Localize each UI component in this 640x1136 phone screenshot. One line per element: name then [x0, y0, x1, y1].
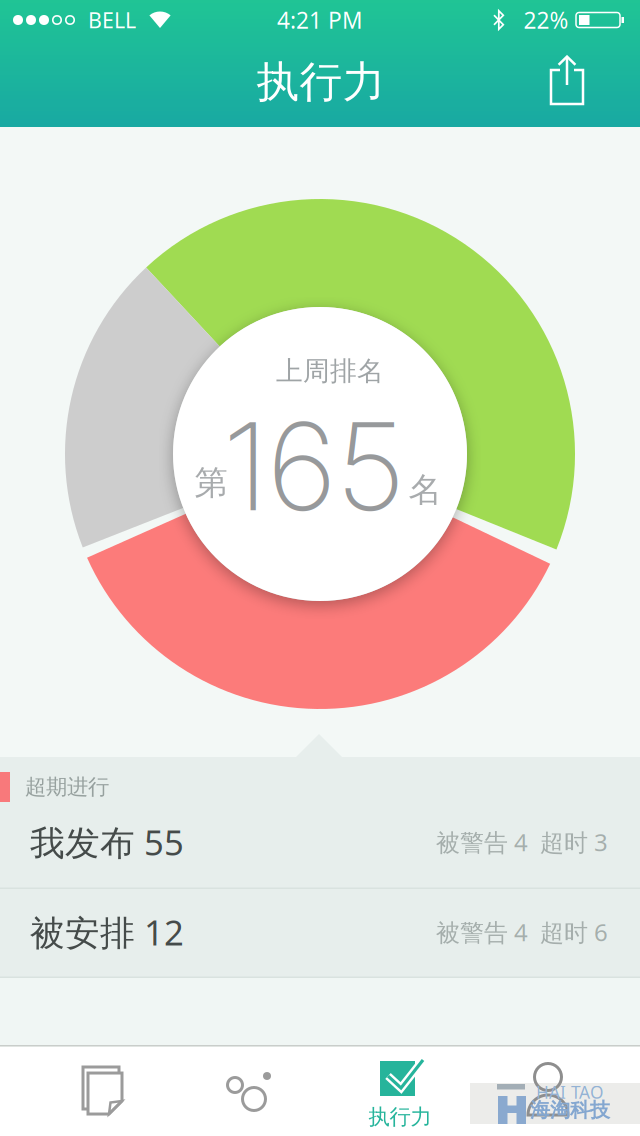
staticText: 名 [408, 469, 441, 510]
staticText: 被警告 4 超时 3 [436, 826, 608, 858]
staticText: 我发布 55 [30, 819, 184, 865]
staticText: HAI TAO [536, 1080, 604, 1103]
staticText: 被安排 12 [30, 909, 184, 955]
staticText: 超期进行 [25, 774, 109, 800]
button[interactable] [535, 53, 599, 113]
button[interactable]: 我发布 55 [0, 802, 640, 882]
staticText: 22% [523, 5, 568, 35]
staticText: 上周排名 [276, 355, 384, 387]
staticText: 165 [223, 393, 404, 539]
button[interactable] [480, 1046, 640, 1136]
button[interactable] [160, 1046, 320, 1136]
staticText: 执行力 [256, 56, 385, 108]
button[interactable]: 执行力 [320, 1046, 480, 1136]
staticText: 第 [194, 462, 227, 503]
staticText: BELL [88, 6, 136, 34]
staticText: 被警告 4 超时 6 [436, 916, 608, 948]
staticText: 海淘科技 [530, 1097, 610, 1123]
staticText: 执行力 [368, 1104, 431, 1130]
button[interactable]: 被安排 12 [0, 892, 640, 972]
staticText: 4:21 PM [277, 5, 363, 35]
button[interactable] [0, 1046, 160, 1136]
